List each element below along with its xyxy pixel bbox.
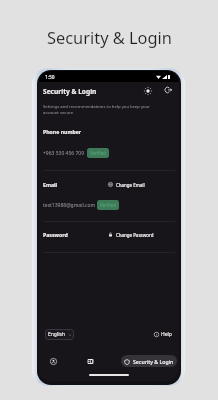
button[interactable]: Password [43,231,68,238]
button[interactable]: English [45,329,74,340]
staticText: +963 530 456 709 [43,150,85,157]
button[interactable]: Apps [84,355,96,367]
staticText: test13988@gmail.com [43,202,96,209]
button[interactable]: Change Email [108,179,145,190]
button[interactable]: Security & Login [121,355,177,367]
staticText: Security & Login [133,358,174,365]
button[interactable]: Toggle theme [142,85,154,97]
button[interactable]: Email [43,181,58,188]
staticText: Security & Login [43,87,97,96]
button[interactable]: Log out [162,84,174,96]
button[interactable]: Phone number [43,128,82,135]
staticText: Verified [90,150,106,156]
staticText: Password [43,231,68,238]
staticText: Phone number [43,128,82,135]
staticText: Verified [100,202,116,208]
staticText: English [48,331,66,338]
staticText: Change Email [116,182,145,188]
staticText: Change Password [116,232,154,238]
staticText: Help [161,331,172,338]
staticText: Security & Login [47,26,172,48]
button[interactable]: Change Password [108,229,154,240]
staticText: 1:50 [45,74,55,81]
staticText: Settings and recommendations to help you… [43,103,151,115]
staticText: Email [43,181,58,188]
button[interactable]: Help [154,329,172,339]
button[interactable]: Account [47,355,59,367]
